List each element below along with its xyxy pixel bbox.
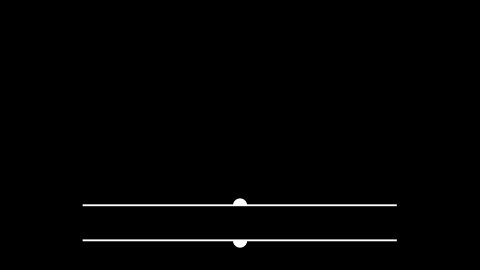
button[interactable]: Bottom slider [83,233,397,249]
button[interactable]: Top slider [83,197,397,213]
